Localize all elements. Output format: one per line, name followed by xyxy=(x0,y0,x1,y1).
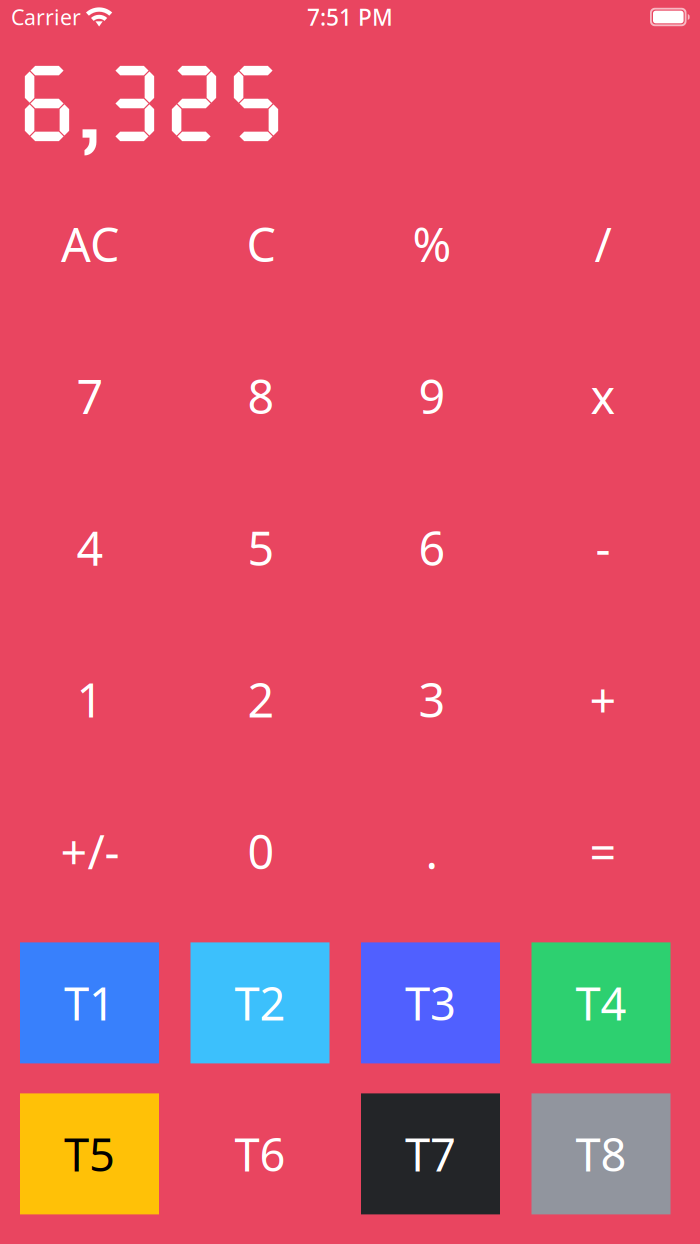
staticText: 0 xyxy=(247,820,274,882)
staticText: + xyxy=(589,668,616,730)
button[interactable]: 5 xyxy=(186,494,336,602)
button[interactable]: 1 xyxy=(15,645,165,753)
staticText: T8 xyxy=(575,1124,626,1184)
staticText: 7 xyxy=(76,365,103,427)
staticText: % xyxy=(412,213,451,275)
staticText: 5 xyxy=(247,517,274,579)
button[interactable]: 2 xyxy=(186,645,336,753)
staticText: 8 xyxy=(247,365,274,427)
staticText: - xyxy=(595,517,610,579)
staticText: 4 xyxy=(76,517,103,579)
staticText: T3 xyxy=(405,973,456,1033)
staticText: T2 xyxy=(234,973,285,1033)
staticText: T5 xyxy=(64,1124,115,1184)
button[interactable]: 6 xyxy=(357,494,507,602)
button[interactable]: T2 xyxy=(190,942,329,1063)
button[interactable]: +/- xyxy=(15,797,165,905)
button[interactable]: + xyxy=(528,645,678,753)
button[interactable]: 9 xyxy=(357,342,507,450)
button[interactable]: 3 xyxy=(357,645,507,753)
button[interactable]: % xyxy=(357,190,507,298)
staticText: C xyxy=(246,213,275,275)
button[interactable]: AC xyxy=(15,190,165,298)
button[interactable]: x xyxy=(528,342,678,450)
button[interactable]: T3 xyxy=(361,942,500,1063)
staticText: 1 xyxy=(76,668,103,730)
button[interactable]: 8 xyxy=(186,342,336,450)
button[interactable]: . xyxy=(357,797,507,905)
button[interactable]: T7 xyxy=(361,1093,500,1214)
button[interactable]: 4 xyxy=(15,494,165,602)
staticText: = xyxy=(589,820,616,882)
button[interactable]: 7 xyxy=(15,342,165,450)
staticText: 2 xyxy=(247,668,274,730)
staticText: T4 xyxy=(575,973,626,1033)
button[interactable]: T4 xyxy=(531,942,670,1063)
staticText: T6 xyxy=(234,1124,285,1184)
button[interactable]: 0 xyxy=(186,797,336,905)
staticText: . xyxy=(425,820,438,882)
button[interactable]: T1 xyxy=(20,942,159,1063)
button[interactable]: T6 xyxy=(190,1093,329,1214)
button[interactable]: / xyxy=(528,190,678,298)
staticText: 6 xyxy=(418,517,445,579)
staticText: 7:51 PM xyxy=(307,2,393,32)
button[interactable]: T5 xyxy=(20,1093,159,1214)
staticText: / xyxy=(594,213,611,275)
button[interactable]: T8 xyxy=(531,1093,670,1214)
staticText: +/- xyxy=(60,820,119,882)
staticText: AC xyxy=(61,213,119,275)
button[interactable]: = xyxy=(528,797,678,905)
staticText: 9 xyxy=(418,365,445,427)
staticText: x xyxy=(590,365,615,427)
button[interactable]: C xyxy=(186,190,336,298)
button[interactable]: - xyxy=(528,494,678,602)
staticText: Carrier xyxy=(11,3,81,31)
staticText: 3 xyxy=(418,668,445,730)
staticText: T1 xyxy=(64,973,115,1033)
staticText: T7 xyxy=(405,1124,456,1184)
